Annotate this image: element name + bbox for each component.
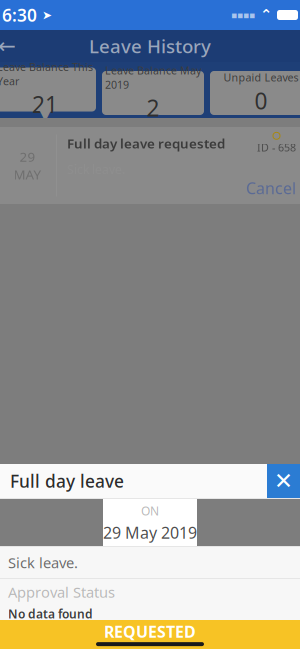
staticText: Approval Status: [8, 582, 115, 602]
staticText: Full day leave requested: [67, 135, 225, 152]
button[interactable]: Close: [267, 464, 300, 498]
staticText: ID - 658: [257, 140, 296, 154]
staticText: Full day leave: [10, 469, 124, 492]
staticText: ✕: [274, 468, 293, 494]
staticText: 29 May 2019: [103, 522, 197, 543]
button[interactable]: Back: [0, 30, 26, 62]
staticText: Cancel: [246, 177, 296, 199]
staticText: 2: [146, 93, 159, 123]
staticText: Unpaid Leaves: [223, 70, 298, 85]
staticText: Leave Balance This Year: [0, 60, 93, 88]
staticText: 21: [32, 89, 58, 119]
staticText: Leave History: [89, 34, 211, 58]
button[interactable]: Cancel: [246, 177, 296, 199]
staticText: ON: [141, 503, 159, 519]
staticText: 29: [19, 148, 35, 165]
button[interactable]: Leave Balance May 2019: [102, 71, 204, 115]
staticText: Sick leave.: [8, 553, 78, 572]
staticText: Leave Balance May 2019: [105, 63, 201, 92]
staticText: MAY: [13, 165, 41, 183]
staticText: ⌃: [255, 7, 277, 23]
staticText: ➤: [42, 8, 52, 22]
staticText: ←: [0, 34, 16, 58]
staticText: No data found: [8, 606, 93, 622]
button[interactable]: Leave Balance This Year: [0, 67, 96, 118]
staticText: ▪▪▪▪: [231, 10, 255, 20]
staticText: ▼: [39, 107, 50, 123]
staticText: 6:30: [2, 3, 42, 26]
staticText: REQUESTED: [104, 621, 196, 642]
button[interactable]: Unpaid Leaves: [210, 71, 300, 115]
staticText: 0: [254, 85, 267, 116]
